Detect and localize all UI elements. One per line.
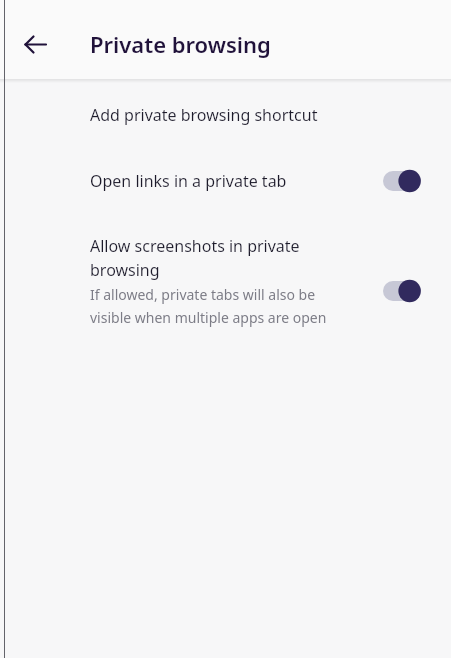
button[interactable]: Toggle Allow screenshots in private brow… — [383, 276, 433, 306]
staticText: Private browsing — [90, 29, 271, 59]
button[interactable]: Allow screenshots in private browsing — [0, 228, 451, 353]
button[interactable]: Toggle Open links in a private tab — [383, 166, 433, 196]
staticText: Open links in a private tab — [90, 170, 287, 192]
staticText: If allowed, private tabs will also be vi… — [90, 285, 351, 327]
button[interactable]: Back — [12, 21, 58, 67]
staticText: Add private browsing shortcut — [90, 104, 318, 126]
staticText: Allow screenshots in private browsing — [90, 235, 351, 281]
button[interactable]: Open links in a private tab — [0, 158, 451, 204]
button[interactable]: Add private browsing shortcut — [0, 95, 451, 135]
